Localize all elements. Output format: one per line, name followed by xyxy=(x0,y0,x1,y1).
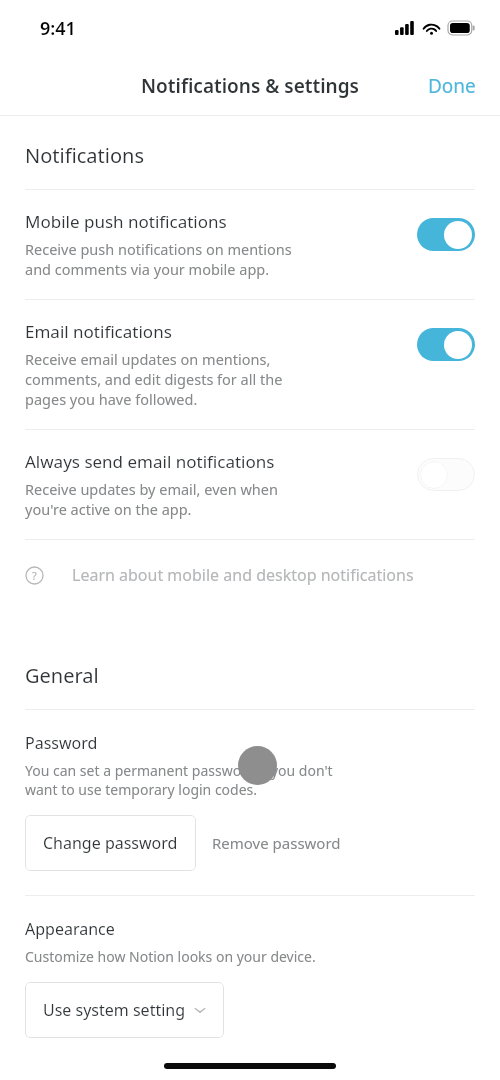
staticText: Customize how Notion looks on your devic… xyxy=(25,947,316,966)
staticText: Change password xyxy=(43,832,178,854)
staticText: Learn about mobile and desktop notificat… xyxy=(72,564,414,586)
button[interactable]: On xyxy=(417,328,475,361)
staticText: Appearance xyxy=(25,918,115,940)
staticText: Receive updates by email, even when xyxy=(25,479,278,499)
button[interactable]: Mobile push notifications xyxy=(0,190,500,299)
button[interactable]: Off xyxy=(417,458,475,491)
button[interactable]: Use system setting xyxy=(25,982,224,1038)
button[interactable]: Always send email notifications xyxy=(0,430,500,539)
staticText: Password xyxy=(25,732,98,754)
button[interactable]: Remove password xyxy=(196,825,357,861)
staticText: Notifications & settings xyxy=(141,73,359,99)
button[interactable]: Change password xyxy=(25,815,196,871)
staticText: General xyxy=(25,662,99,689)
staticText: pages you have followed. xyxy=(25,389,198,409)
staticText: ? xyxy=(32,568,37,583)
button[interactable]: Email notifications xyxy=(0,300,500,429)
button[interactable]: ? xyxy=(0,560,439,590)
staticText: Mobile push notifications xyxy=(25,210,227,233)
staticText: Always send email notifications xyxy=(25,450,275,473)
staticText: want to use temporary login codes. xyxy=(25,780,258,799)
staticText: Receive email updates on mentions, xyxy=(25,349,271,369)
staticText: Done xyxy=(428,73,476,99)
staticText: you're active on the app. xyxy=(25,499,192,519)
staticText: and comments via your mobile app. xyxy=(25,259,270,279)
staticText: Email notifications xyxy=(25,320,172,343)
staticText: Receive push notifications on mentions xyxy=(25,239,292,259)
staticText: Notifications xyxy=(25,142,144,169)
button[interactable]: On xyxy=(417,218,475,251)
staticText: Use system setting xyxy=(43,999,186,1021)
button[interactable]: Done xyxy=(404,63,500,109)
staticText: You can set a permanent password if you … xyxy=(25,761,333,780)
staticText: comments, and edit digests for all the xyxy=(25,369,283,389)
staticText: Remove password xyxy=(212,833,341,853)
staticText: 9:41 xyxy=(40,16,76,41)
